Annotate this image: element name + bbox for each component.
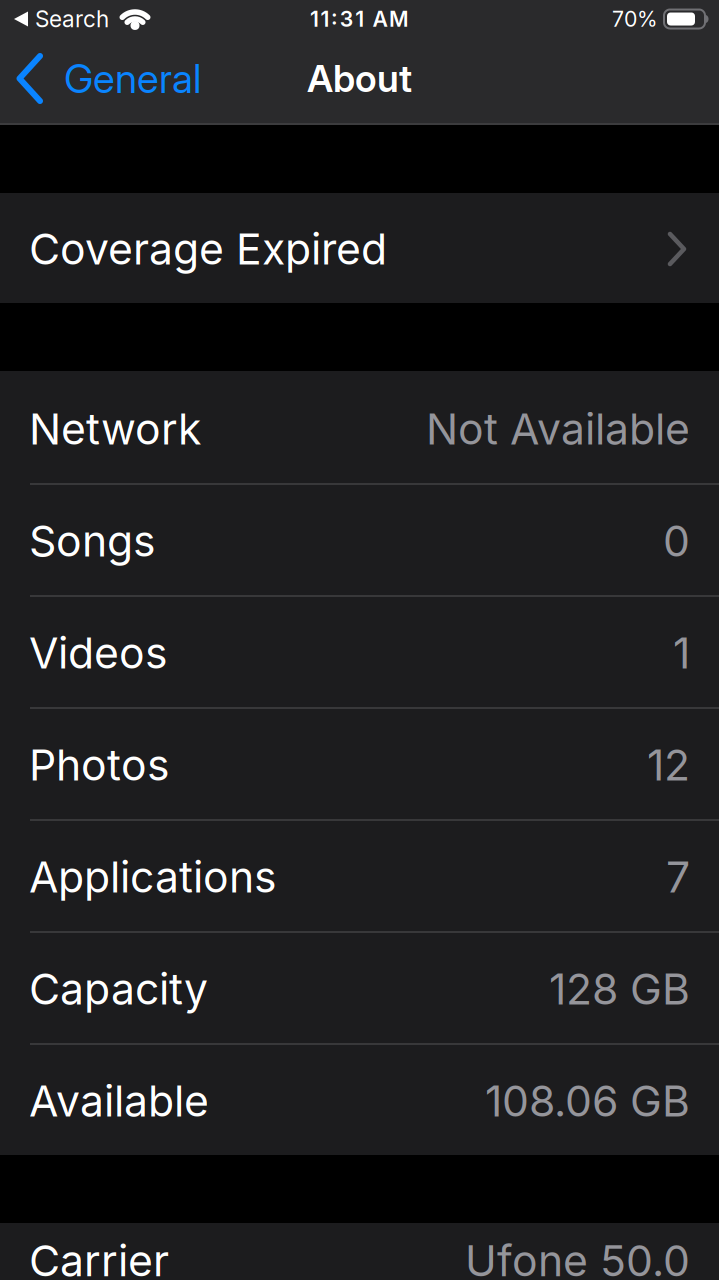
staticText: 70% bbox=[612, 6, 658, 32]
staticText: 128 GB bbox=[549, 963, 690, 1015]
staticText: 12 bbox=[647, 739, 690, 791]
staticText: 11:31 AM bbox=[310, 6, 409, 32]
staticText: Songs bbox=[29, 515, 156, 567]
staticText: Available bbox=[29, 1075, 209, 1127]
staticText: Carrier bbox=[29, 1235, 169, 1280]
staticText: Coverage Expired bbox=[29, 223, 387, 275]
staticText: Videos bbox=[29, 627, 168, 679]
staticText: Applications bbox=[29, 851, 277, 903]
staticText: Not Available bbox=[426, 403, 690, 455]
button[interactable]: Coverage Expired bbox=[0, 193, 719, 303]
staticText: 1 bbox=[673, 627, 690, 679]
staticText: Photos bbox=[29, 739, 170, 791]
button[interactable]: General bbox=[17, 54, 201, 103]
staticText: Network bbox=[29, 403, 201, 455]
staticText: Search bbox=[35, 5, 109, 33]
staticText: General bbox=[64, 54, 201, 103]
staticText: 108.06 GB bbox=[485, 1075, 690, 1127]
staticText: Capacity bbox=[29, 963, 208, 1015]
staticText: 0 bbox=[663, 515, 690, 567]
staticText: Ufone 50.0 bbox=[465, 1235, 690, 1280]
staticText: About bbox=[307, 56, 412, 101]
staticText: 7 bbox=[666, 851, 690, 903]
